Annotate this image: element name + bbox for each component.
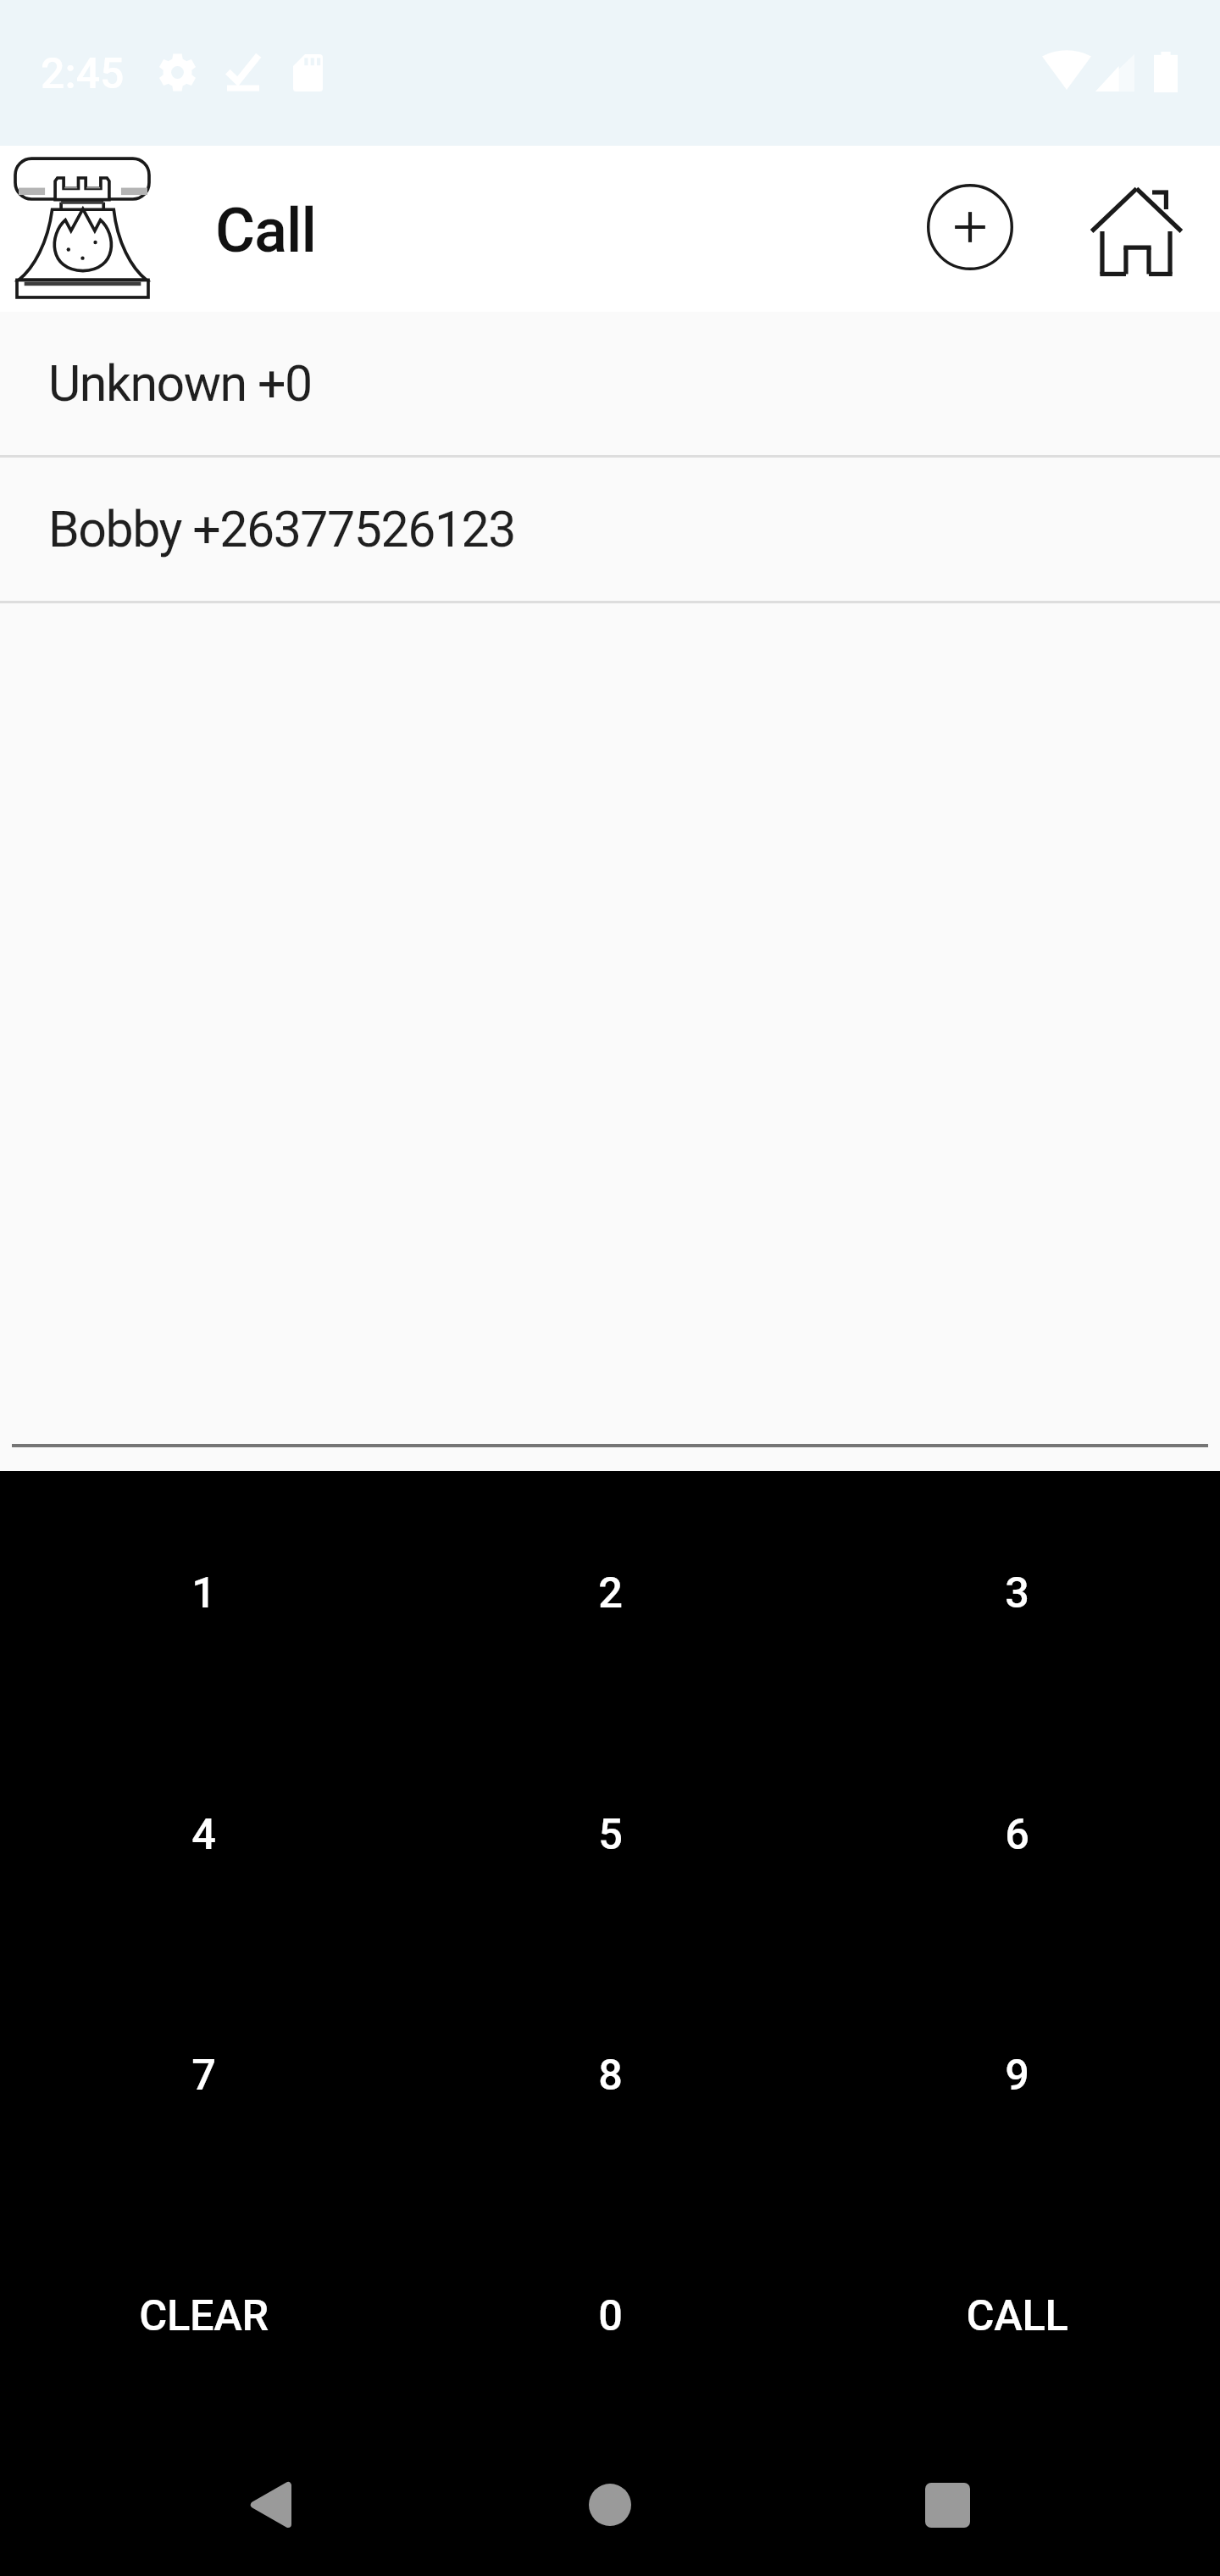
button[interactable]: 3 <box>813 1471 1220 1713</box>
button[interactable]: 0 <box>407 2194 813 2434</box>
button[interactable]: 2 <box>407 1471 813 1713</box>
staticText: Bobby +26377526123 <box>48 500 516 558</box>
button[interactable]: Bobby +26377526123 <box>0 458 1220 601</box>
staticText: 5 <box>598 1809 623 1859</box>
staticText: CALL <box>966 2290 1068 2340</box>
button[interactable]: Add contact <box>911 168 1029 286</box>
staticText: 7 <box>191 2050 216 2100</box>
staticText: Unknown +0 <box>48 354 312 413</box>
button[interactable]: 9 <box>813 1953 1220 2194</box>
staticText: 0 <box>598 2290 623 2340</box>
button[interactable]: 6 <box>813 1713 1220 1953</box>
staticText: 8 <box>598 2050 623 2100</box>
button[interactable]: Recent apps <box>879 2437 1015 2573</box>
button[interactable]: Home <box>1077 172 1195 291</box>
staticText: CLEAR <box>139 2290 269 2340</box>
staticText: 6 <box>1005 1809 1029 1859</box>
staticText: 2:45 <box>41 49 125 99</box>
button[interactable]: Unknown +0 <box>0 312 1220 455</box>
button[interactable]: 1 <box>0 1471 407 1713</box>
staticText: 3 <box>1005 1568 1029 1618</box>
button[interactable]: Back <box>202 2437 337 2573</box>
button[interactable]: CALL <box>813 2194 1220 2434</box>
button[interactable]: Home <box>542 2437 678 2573</box>
button[interactable]: 4 <box>0 1713 407 1953</box>
staticText: 9 <box>1005 2050 1029 2100</box>
staticText: 2 <box>598 1568 623 1618</box>
button[interactable]: 7 <box>0 1953 407 2194</box>
button[interactable]: CLEAR <box>0 2194 407 2434</box>
button[interactable]: 5 <box>407 1713 813 1953</box>
staticText: 1 <box>191 1568 216 1618</box>
button[interactable]: 8 <box>407 1953 813 2194</box>
staticText: Call <box>215 195 316 266</box>
staticText: 4 <box>191 1809 216 1859</box>
